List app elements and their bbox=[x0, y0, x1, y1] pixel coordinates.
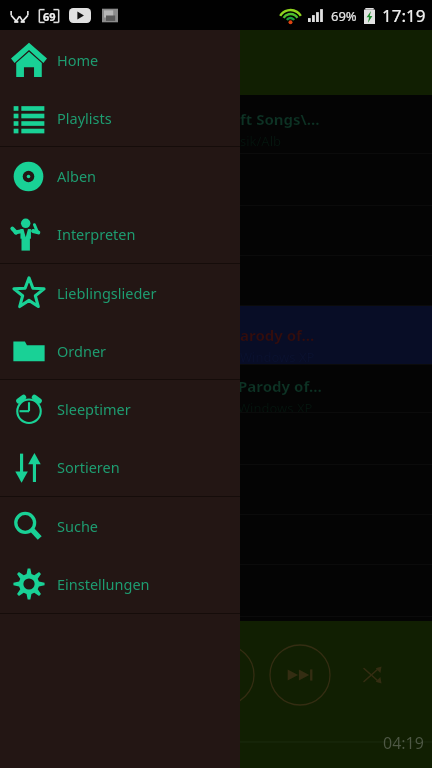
button[interactable] bbox=[0, 206, 432, 255]
button[interactable] bbox=[0, 565, 432, 616]
button[interactable]: Lieblingslieder bbox=[0, 264, 240, 322]
button[interactable]: Ordner bbox=[0, 322, 240, 379]
staticText: sik/Alb bbox=[240, 132, 282, 150]
button[interactable]: arody of… bbox=[0, 306, 432, 364]
button[interactable]: Einstellungen bbox=[0, 555, 240, 613]
button[interactable] bbox=[0, 154, 432, 205]
staticText: Playlists bbox=[57, 108, 112, 128]
button[interactable]: Home bbox=[0, 30, 240, 89]
button[interactable] bbox=[0, 515, 432, 564]
staticText: Lieblingslieder bbox=[57, 283, 157, 303]
button[interactable] bbox=[0, 413, 432, 464]
staticText: 69% bbox=[331, 7, 357, 25]
staticText: Ordner bbox=[57, 341, 107, 361]
button[interactable]: Alben bbox=[0, 147, 240, 205]
button[interactable]: Playlists bbox=[0, 89, 240, 146]
staticText: 69 bbox=[43, 9, 56, 24]
staticText: arody of… bbox=[240, 325, 315, 345]
staticText: ft Songs\… bbox=[240, 109, 320, 129]
staticText: Suche bbox=[57, 516, 99, 536]
button[interactable]: Sleeptimer bbox=[0, 380, 240, 438]
staticText: Home bbox=[57, 50, 99, 70]
staticText: Sortieren bbox=[57, 457, 120, 477]
staticText: 04:19 bbox=[383, 732, 424, 754]
staticText: Windows XP bbox=[238, 399, 313, 412]
button[interactable]: ft Songs\… bbox=[0, 95, 432, 153]
staticText: Parody of… bbox=[238, 376, 322, 396]
button[interactable]: Parody of… bbox=[0, 365, 432, 412]
button[interactable]: Sortieren bbox=[0, 438, 240, 496]
button[interactable]: Suche bbox=[0, 497, 240, 555]
button[interactable]: Interpreten bbox=[0, 205, 240, 263]
staticText: Sleeptimer bbox=[57, 399, 131, 419]
staticText: Einstellungen bbox=[57, 574, 150, 594]
button[interactable] bbox=[0, 256, 432, 305]
staticText: 17:19 bbox=[382, 4, 426, 27]
staticText: Alben bbox=[57, 166, 97, 186]
button[interactable] bbox=[0, 465, 432, 514]
staticText: Interpreten bbox=[57, 224, 136, 244]
